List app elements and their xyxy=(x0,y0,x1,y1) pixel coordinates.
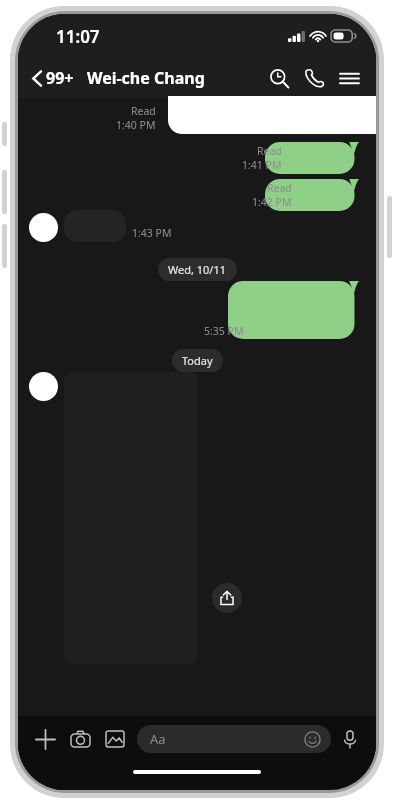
staticText: 99+ xyxy=(46,67,74,89)
button[interactable]: Wed, 10/11 xyxy=(158,258,237,281)
button[interactable]: Aa xyxy=(137,725,331,753)
button[interactable]: Menu xyxy=(335,64,363,92)
staticText: Wei-che Chang xyxy=(87,67,205,89)
staticText: Read xyxy=(257,144,282,158)
button[interactable]: Search xyxy=(265,64,293,92)
staticText: 1:43 PM xyxy=(132,226,172,240)
staticText: Wed, 10/11 xyxy=(168,262,227,277)
button[interactable] xyxy=(168,96,376,134)
other: Back xyxy=(32,70,42,87)
staticText: 1:42 PM xyxy=(252,195,292,209)
staticText: Aa xyxy=(150,730,166,748)
button[interactable] xyxy=(29,213,58,242)
button[interactable]: Add xyxy=(30,724,60,754)
staticText: Wei_Ya...0630_ROP.zip xyxy=(177,756,310,773)
button[interactable]: Call xyxy=(300,64,328,92)
button[interactable] xyxy=(64,210,126,242)
button[interactable] xyxy=(265,142,359,174)
button[interactable]: Camera xyxy=(65,724,95,754)
button[interactable]: Sticker xyxy=(302,729,322,749)
staticText: 1:40 PM xyxy=(116,118,156,132)
button[interactable]: Gallery xyxy=(100,724,130,754)
button[interactable]: Wei_Ya...0630_ROP.zip xyxy=(117,749,359,790)
staticText: Read xyxy=(267,181,292,195)
button[interactable] xyxy=(29,372,58,401)
button[interactable]: Share xyxy=(212,583,242,613)
staticText: Read xyxy=(131,104,156,118)
button[interactable]: Voice message xyxy=(336,725,364,753)
button[interactable]: Back xyxy=(30,63,76,93)
button[interactable] xyxy=(265,179,359,211)
button[interactable] xyxy=(228,281,359,339)
staticText: Today xyxy=(182,353,213,368)
button[interactable]: Today xyxy=(172,349,223,372)
staticText: 11:07 xyxy=(56,25,100,48)
staticText: 5:35 PM xyxy=(204,324,244,338)
staticText: 1:41 PM xyxy=(242,158,282,172)
